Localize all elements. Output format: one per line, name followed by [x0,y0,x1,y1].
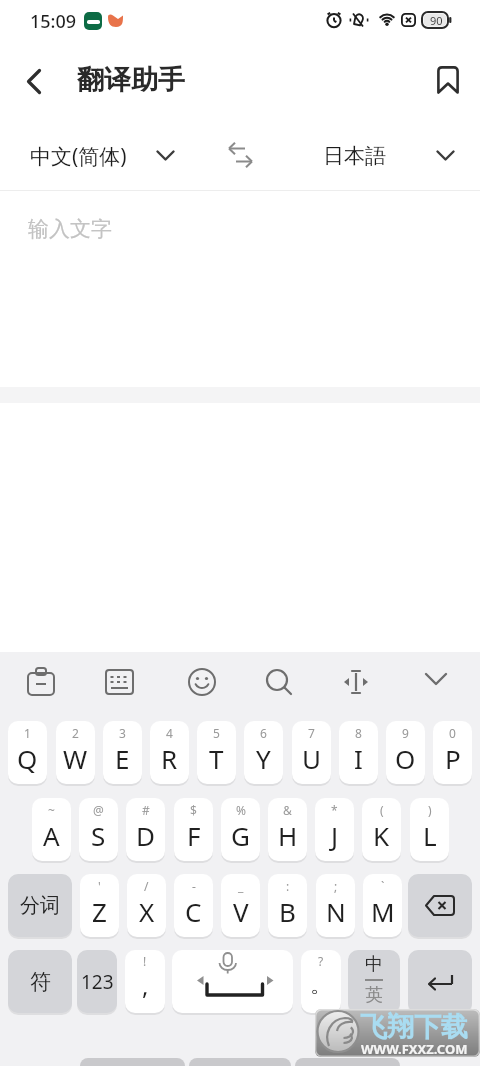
button[interactable]: 6 [244,721,283,784]
staticText: % [236,802,246,818]
staticText: 8 [355,725,362,741]
staticText: & [283,802,292,818]
staticText: 9 [402,725,409,741]
staticText: 日本語 [323,143,386,169]
staticText: F [187,818,201,853]
button[interactable]: ! [125,950,165,1013]
staticText: G [231,818,250,853]
button[interactable]: @ [79,798,118,861]
staticText: $ [190,802,197,818]
staticText: 飞翔下载 [360,1010,468,1040]
staticText: 输入文字 [28,216,112,242]
button[interactable]: 1 [8,721,47,784]
staticText: ~ [48,802,55,818]
button[interactable]: 日本語 [323,135,386,177]
button[interactable]: 4 [150,721,189,784]
staticText: 0 [449,725,456,741]
staticText: - [192,878,196,894]
button[interactable]: ` [363,874,402,937]
button[interactable] [424,672,448,688]
button[interactable]: : [268,874,307,937]
button[interactable]: 123 [77,950,117,1013]
staticText: 90 [430,13,443,28]
button[interactable]: 中文(简体) [30,135,127,177]
staticText: ? [318,953,324,969]
staticText: : [286,878,290,894]
staticText: ) [428,802,432,818]
button[interactable] [437,66,459,94]
button[interactable]: 8 [339,721,378,784]
button[interactable]: 5 [197,721,236,784]
staticText: B [279,894,296,929]
staticText: L [423,818,437,853]
staticText: * [331,802,338,818]
button[interactable]: 符 [8,950,72,1013]
staticText: ' [98,878,101,894]
staticText: 15:09 [30,9,77,34]
button[interactable]: 9 [386,721,425,784]
button[interactable]: - [174,874,213,937]
button[interactable] [265,668,293,696]
staticText: 1 [24,725,31,741]
staticText: 7 [308,725,315,741]
staticText: 分词 [20,893,60,918]
button[interactable]: ' [80,874,119,937]
staticText: _ [238,878,244,894]
button[interactable] [408,950,472,1013]
staticText: E [115,741,130,776]
staticText: D [136,818,155,853]
button[interactable]: ; [316,874,355,937]
staticText: 中文(简体) [30,142,127,171]
button[interactable]: ~ [32,798,71,861]
button[interactable] [27,667,55,697]
button[interactable] [188,668,216,696]
button[interactable]: / [127,874,166,937]
button[interactable]: 7 [292,721,331,784]
staticText: / [144,878,149,894]
button[interactable]: 分词 [8,874,72,937]
button[interactable]: ( [362,798,401,861]
button[interactable]: 2 [56,721,95,784]
button[interactable]: % [221,798,260,861]
staticText: Y [256,741,271,776]
staticText: Q [17,741,38,776]
staticText: 英 [365,984,383,1007]
staticText: 符 [30,969,51,995]
button[interactable] [341,669,371,695]
staticText: K [373,818,390,853]
staticText: M [371,894,395,929]
staticText: ` [381,878,385,894]
staticText: J [331,818,339,853]
button[interactable]: * [315,798,354,861]
button[interactable]: & [268,798,307,861]
button[interactable] [25,69,43,94]
staticText: , [142,969,149,1002]
button[interactable]: 3 [103,721,142,784]
button[interactable] [228,142,253,168]
staticText: X [139,894,155,929]
staticText: 5 [213,725,220,741]
button[interactable]: _ [221,874,260,937]
staticText: P [445,741,461,776]
button[interactable] [172,950,293,1013]
staticText: ! [143,953,147,969]
button[interactable] [105,669,134,695]
staticText: 3 [119,725,126,741]
button[interactable]: # [126,798,165,861]
staticText: I [354,741,363,776]
staticText: @ [93,802,104,818]
staticText: T [209,741,224,776]
button[interactable]: 中 [348,950,400,1013]
button[interactable]: ) [410,798,449,861]
button[interactable]: 0 [433,721,472,784]
staticText: O [395,741,416,776]
staticText: Z [92,894,107,929]
staticText: 中 [365,953,383,976]
staticText: C [185,894,202,929]
button[interactable] [408,874,472,937]
button[interactable]: ? [301,950,341,1013]
button[interactable]: $ [174,798,213,861]
staticText: H [278,818,298,853]
staticText: 6 [260,725,267,741]
staticText: 2 [72,725,79,741]
